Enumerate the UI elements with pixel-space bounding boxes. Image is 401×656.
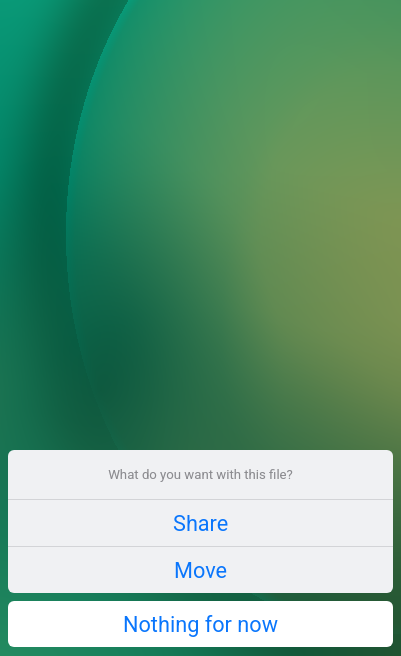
staticText: Share [173, 511, 229, 536]
staticText: What do you want with this file? [108, 467, 293, 482]
staticText: Nothing for now [123, 612, 278, 637]
button[interactable]: Nothing for now [8, 601, 393, 647]
button[interactable]: Share [8, 500, 393, 546]
staticText: Move [174, 558, 228, 583]
button[interactable]: Move [8, 547, 393, 593]
